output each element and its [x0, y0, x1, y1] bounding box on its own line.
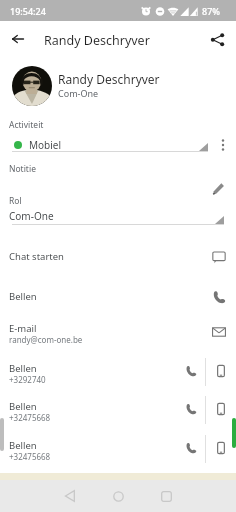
button[interactable]: More options: [212, 134, 234, 156]
staticText: Com-One: [9, 209, 54, 223]
button[interactable]: E-mail: [0, 313, 236, 351]
button[interactable]: Message: [211, 399, 231, 419]
staticText: Bellen: [9, 400, 37, 413]
button[interactable]: Back: [0, 21, 36, 57]
staticText: Rol: [9, 195, 22, 207]
button[interactable]: Back: [52, 480, 88, 512]
staticText: randy@com-one.be: [9, 334, 83, 345]
button[interactable]: Mobiel: [12, 134, 208, 156]
button[interactable]: Bellen: [0, 353, 236, 391]
staticText: +32475668: [9, 412, 51, 423]
button[interactable]: Call: [181, 399, 201, 419]
staticText: Chat starten: [9, 250, 64, 263]
staticText: Mobiel: [29, 138, 62, 152]
button[interactable]: Edit note: [206, 176, 230, 200]
staticText: E-mail: [9, 322, 37, 335]
staticText: 19:54:24: [10, 5, 46, 17]
button[interactable]: Call: [181, 361, 201, 381]
staticText: +32475668: [9, 451, 51, 462]
staticText: Activiteit: [9, 119, 44, 131]
button[interactable]: Recent apps: [148, 480, 184, 512]
staticText: +3292740: [9, 374, 46, 385]
staticText: Randy Deschryver: [58, 71, 160, 87]
button[interactable]: Chat starten: [0, 240, 236, 273]
button[interactable]: Message: [211, 361, 231, 381]
staticText: Bellen: [9, 290, 37, 303]
staticText: Com-One: [58, 87, 99, 99]
button[interactable]: Bellen: [0, 280, 236, 313]
button[interactable]: Message: [211, 438, 231, 458]
button[interactable]: Bellen: [0, 391, 236, 429]
button[interactable]: Bellen: [0, 430, 236, 468]
button[interactable]: Randy Deschryver: [0, 59, 236, 113]
staticText: Notitie: [9, 163, 36, 175]
staticText: Bellen: [9, 362, 37, 375]
staticText: Bellen: [9, 439, 37, 452]
button[interactable]: Com-One: [0, 206, 236, 228]
button[interactable]: Call: [181, 438, 201, 458]
staticText: Randy Deschryver: [44, 32, 150, 49]
button[interactable]: Share: [199, 21, 235, 57]
button[interactable]: Home: [100, 480, 136, 512]
staticText: 87%: [202, 5, 220, 17]
